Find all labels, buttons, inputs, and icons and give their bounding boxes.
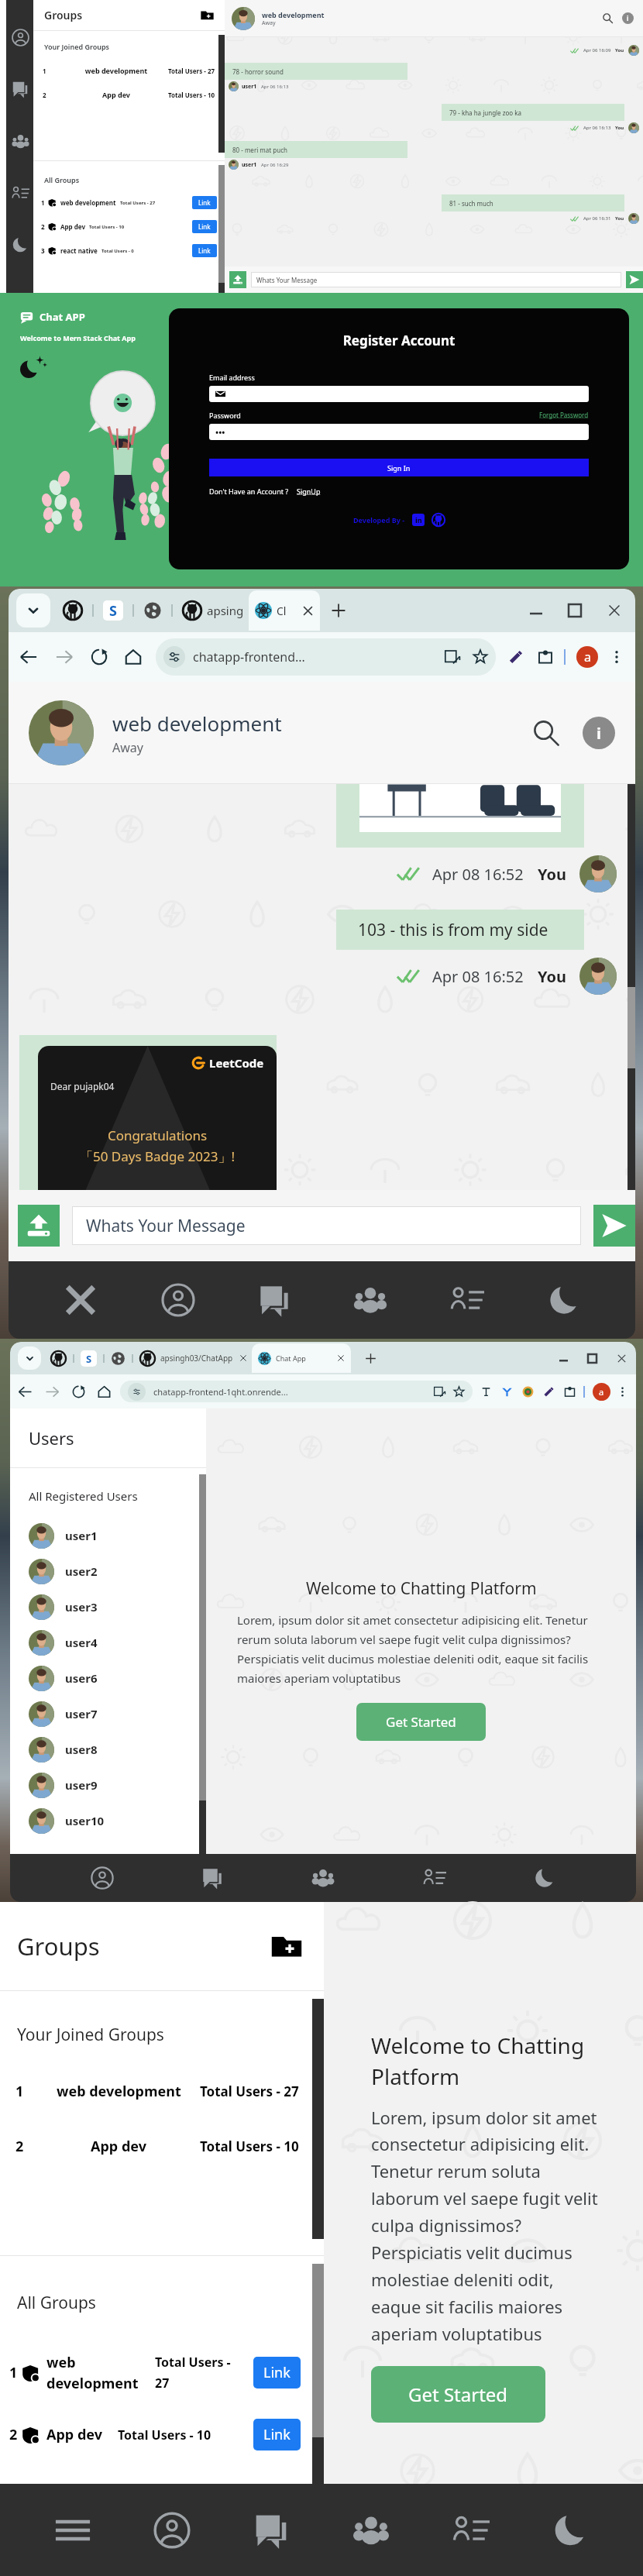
button[interactable]: Profile xyxy=(9,26,32,49)
button[interactable]: Dark mode xyxy=(526,1859,563,1897)
staticText: Apr 06 16:13 xyxy=(261,84,289,90)
staticText: Welcome to Chatting Platform xyxy=(306,1577,537,1600)
staticText: in xyxy=(415,515,422,524)
button[interactable]: 1 xyxy=(9,2353,301,2392)
button[interactable]: chatapp-frontend... xyxy=(163,638,488,676)
staticText: Users xyxy=(29,1426,74,1450)
button[interactable]: Groups xyxy=(304,1859,342,1897)
button[interactable]: Link xyxy=(198,222,211,231)
staticText: All Groups xyxy=(44,175,80,184)
button[interactable]: 1 xyxy=(43,66,215,75)
button[interactable]: Search xyxy=(533,720,559,746)
button[interactable]: Chats xyxy=(194,1859,231,1897)
button[interactable]: 2 xyxy=(15,2137,299,2156)
button[interactable]: Link xyxy=(263,2425,291,2444)
button[interactable]: Profile xyxy=(83,1859,122,1897)
button[interactable]: user6 xyxy=(29,1660,206,1696)
staticText: user3 xyxy=(65,1599,98,1615)
button[interactable]: Chat App xyxy=(258,1343,345,1373)
staticText: Get Started xyxy=(386,1713,456,1731)
button[interactable]: Groups xyxy=(44,0,214,30)
button[interactable]: Send xyxy=(593,1205,635,1247)
button[interactable]: Contacts xyxy=(9,181,32,205)
button[interactable]: Chats xyxy=(9,77,32,101)
staticText: Link xyxy=(198,222,211,231)
button[interactable]: chatapp-frontend-1qht.onrende... xyxy=(128,1381,465,1402)
button[interactable]: Get Started xyxy=(386,1713,456,1731)
staticText: You xyxy=(615,215,624,222)
button[interactable]: user1 xyxy=(29,1518,206,1553)
button[interactable]: user7 xyxy=(29,1696,206,1732)
button[interactable]: Profile xyxy=(153,1275,203,1325)
button[interactable]: Dark mode xyxy=(540,1276,588,1324)
button[interactable]: user3 xyxy=(29,1589,206,1625)
button[interactable]: Contacts xyxy=(442,1275,492,1325)
staticText: Developed By - xyxy=(353,515,405,524)
staticText: Chat APP xyxy=(40,310,85,324)
button[interactable]: Send xyxy=(626,271,643,288)
button[interactable]: 1 xyxy=(41,191,217,215)
button[interactable]: Add group xyxy=(271,1931,302,1962)
button[interactable]: Tab list xyxy=(18,1346,41,1370)
button[interactable]: Account xyxy=(593,1383,610,1401)
button[interactable]: Chats xyxy=(246,2505,297,2556)
button[interactable]: Link xyxy=(198,198,211,207)
button[interactable]: SignUp xyxy=(297,487,321,496)
button[interactable]: Forgot Password xyxy=(539,411,589,419)
button[interactable]: 3 xyxy=(41,239,217,263)
button[interactable]: user4 xyxy=(29,1625,206,1660)
button[interactable]: Profile xyxy=(146,2504,198,2557)
button[interactable]: 2 xyxy=(41,215,217,239)
button[interactable]: Account xyxy=(576,646,598,668)
staticText: 1 xyxy=(41,198,45,207)
staticText: Total Users - 0 xyxy=(101,248,134,254)
button[interactable]: Link xyxy=(198,246,211,255)
button[interactable]: Chats xyxy=(250,1276,298,1324)
button[interactable]: user10 xyxy=(29,1803,206,1838)
staticText: You xyxy=(538,966,567,987)
button[interactable]: GitHub xyxy=(432,513,445,527)
button[interactable]: Sign In xyxy=(209,459,589,476)
button[interactable]: Add group xyxy=(201,9,214,22)
button[interactable]: Contacts xyxy=(445,2504,497,2557)
staticText: Register Account xyxy=(209,332,589,349)
staticText: Total Users - 10 xyxy=(168,91,215,99)
staticText: web development xyxy=(46,2353,155,2392)
staticText: chatapp-frontend... xyxy=(193,648,305,665)
staticText: 78 - horror sound xyxy=(232,67,284,76)
button[interactable]: user9 xyxy=(29,1767,206,1803)
button[interactable]: Get Started xyxy=(408,2382,508,2407)
button[interactable]: Groups xyxy=(345,2504,397,2557)
button[interactable]: user8 xyxy=(29,1732,206,1767)
button[interactable]: LinkedIn xyxy=(412,514,425,526)
staticText: Total Users - 10 xyxy=(200,2137,299,2155)
staticText: i xyxy=(597,723,601,744)
button[interactable]: Search xyxy=(603,13,613,23)
button[interactable]: Contacts xyxy=(415,1859,454,1897)
staticText: Apr 08 16:52 xyxy=(432,966,524,987)
button[interactable]: Info xyxy=(583,717,615,749)
staticText: a xyxy=(584,648,591,665)
staticText: Get Started xyxy=(408,2382,508,2407)
button[interactable]: Tab list xyxy=(16,593,50,628)
staticText: Chat App xyxy=(276,1353,306,1363)
staticText: web development xyxy=(112,710,282,737)
button[interactable]: Close xyxy=(56,1275,105,1325)
staticText: 80 - meri mat puch xyxy=(232,146,287,154)
button[interactable]: user2 xyxy=(29,1553,206,1589)
button[interactable]: Groups xyxy=(9,129,32,153)
button[interactable]: Upload xyxy=(18,1205,60,1247)
button[interactable]: Info xyxy=(622,12,634,24)
button[interactable]: Dark mode xyxy=(545,2505,596,2556)
button[interactable]: Menu xyxy=(47,2505,98,2556)
button[interactable]: Upload xyxy=(229,271,246,288)
staticText: App dev xyxy=(91,2137,146,2156)
button[interactable]: Dark mode xyxy=(9,233,32,256)
button[interactable]: Link xyxy=(263,2363,291,2382)
button[interactable]: Groups xyxy=(346,1275,395,1325)
button[interactable]: 2 xyxy=(9,2419,301,2450)
staticText: Total Users - 27 xyxy=(200,2082,299,2100)
button[interactable]: 2 xyxy=(43,90,215,99)
button[interactable]: 1 xyxy=(15,2082,299,2101)
button[interactable]: Cl xyxy=(255,590,314,631)
